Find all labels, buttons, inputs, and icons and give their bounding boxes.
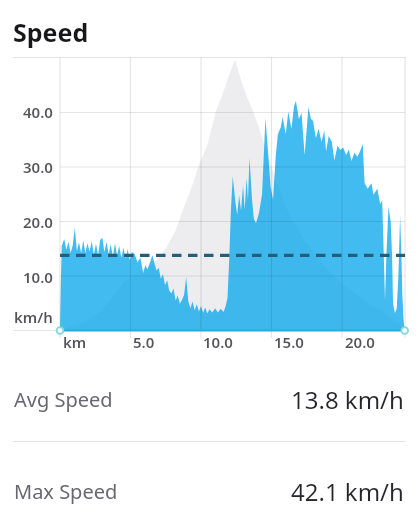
staticText: 5.0: [133, 332, 155, 351]
staticText: Avg Speed: [14, 386, 113, 413]
staticText: km: [63, 332, 87, 351]
staticText: 20.0: [23, 212, 53, 232]
staticText: 40.0: [23, 102, 53, 122]
staticText: Max Speed: [14, 478, 118, 505]
staticText: 30.0: [23, 157, 53, 177]
staticText: km/h: [14, 307, 53, 327]
staticText: 20.0: [345, 332, 375, 351]
staticText: Speed: [13, 15, 89, 49]
staticText: 10.0: [203, 332, 233, 351]
staticText: 10.0: [23, 267, 53, 287]
staticText: 42.1 km/h: [291, 475, 404, 508]
staticText: 13.8 km/h: [291, 383, 404, 416]
staticText: 15.0: [274, 332, 304, 351]
